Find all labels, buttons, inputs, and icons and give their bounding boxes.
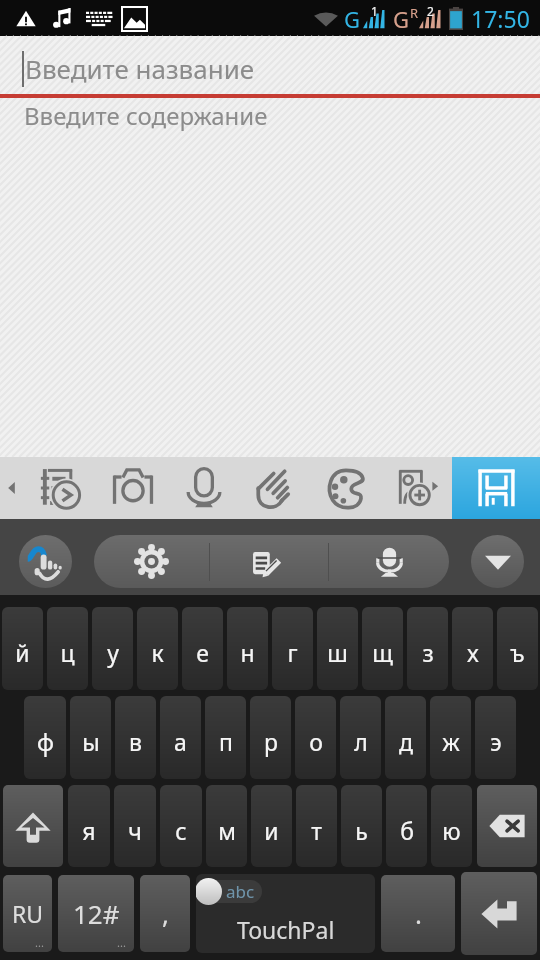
staticText: ш [327, 637, 348, 668]
button[interactable]: ь [341, 785, 382, 867]
button[interactable]: е [182, 607, 223, 690]
staticText: б [400, 815, 414, 846]
staticText: з [422, 637, 434, 668]
button[interactable]: Colour [310, 457, 381, 519]
staticText: о [309, 726, 323, 757]
staticText: ю [442, 815, 461, 846]
staticText: и [264, 815, 279, 846]
staticText: т [311, 815, 322, 846]
staticText: ... [35, 935, 44, 950]
button[interactable]: я [68, 785, 110, 867]
button[interactable]: Settings [94, 535, 209, 588]
button[interactable]: ц [47, 607, 88, 690]
button[interactable]: Enter [461, 872, 537, 955]
staticText: й [15, 637, 30, 668]
staticText: ф [37, 726, 54, 757]
staticText: Введите содержание [24, 99, 268, 132]
staticText: Введите название [25, 51, 255, 86]
staticText: х [467, 637, 479, 668]
button[interactable]: Schedule [26, 457, 97, 519]
button[interactable]: м [206, 785, 247, 867]
button[interactable]: д [385, 696, 426, 779]
button[interactable]: ч [114, 785, 156, 867]
staticText: 17:50 [471, 3, 530, 34]
staticText: я [82, 815, 96, 846]
staticText: 2 [427, 3, 434, 19]
button[interactable]: т [296, 785, 337, 867]
button[interactable]: RU [3, 875, 52, 952]
button[interactable]: More [0, 457, 26, 519]
button[interactable]: ж [430, 696, 471, 779]
staticText: к [151, 637, 164, 668]
button[interactable]: Backspace [477, 785, 537, 867]
button[interactable]: Shift [3, 785, 63, 867]
button[interactable]: з [407, 607, 448, 690]
button[interactable]: TouchPal [19, 535, 72, 588]
button[interactable]: Hide keyboard [471, 535, 524, 588]
button[interactable]: й [2, 607, 43, 690]
staticText: TouchPal [237, 914, 335, 945]
staticText: г [287, 637, 298, 668]
button[interactable]: Voice input [329, 535, 449, 588]
staticText: ъ [510, 637, 525, 668]
button[interactable]: 12# [58, 875, 134, 952]
button[interactable]: ф [24, 696, 66, 779]
button[interactable]: у [92, 607, 133, 690]
button[interactable]: р [250, 696, 291, 779]
button[interactable]: , [140, 875, 190, 952]
button[interactable]: ю [431, 785, 472, 867]
staticText: н [240, 637, 255, 668]
button[interactable]: Edit [210, 535, 328, 588]
staticText: п [219, 726, 233, 757]
button[interactable]: Save [452, 457, 540, 519]
button[interactable]: о [295, 696, 336, 779]
button[interactable]: х [452, 607, 493, 690]
staticText: 12# [73, 896, 120, 931]
staticText: abc [226, 880, 255, 903]
staticText: э [490, 726, 502, 757]
staticText: 1 [371, 3, 378, 19]
button[interactable]: э [475, 696, 516, 779]
button[interactable]: Record audio [168, 457, 239, 519]
button[interactable]: н [227, 607, 268, 690]
staticText: р [264, 726, 278, 757]
staticText: щ [372, 637, 393, 668]
button[interactable]: щ [362, 607, 403, 690]
staticText: G [393, 4, 410, 34]
button[interactable]: а [160, 696, 201, 779]
button[interactable]: л [340, 696, 381, 779]
staticText: R [410, 4, 419, 22]
button[interactable]: Add attachment [381, 457, 452, 519]
button[interactable]: Draw [239, 457, 310, 519]
button[interactable]: к [137, 607, 178, 690]
staticText: ч [128, 815, 142, 846]
button[interactable]: и [251, 785, 292, 867]
button[interactable]: ш [317, 607, 358, 690]
staticText: с [175, 815, 187, 846]
staticText: д [399, 726, 413, 757]
staticText: а [174, 726, 187, 757]
staticText: RU [12, 898, 44, 929]
button[interactable]: . [381, 875, 455, 952]
button[interactable]: ы [70, 696, 111, 779]
staticText: у [107, 637, 119, 668]
button[interactable]: в [115, 696, 156, 779]
button[interactable]: г [272, 607, 313, 690]
staticText: ... [117, 935, 126, 950]
staticText: в [129, 726, 142, 757]
staticText: . [415, 896, 422, 931]
button[interactable]: Space [196, 874, 375, 953]
button[interactable]: п [205, 696, 246, 779]
staticText: м [218, 815, 236, 846]
button[interactable]: с [160, 785, 202, 867]
staticText: л [354, 726, 368, 757]
button[interactable]: ъ [497, 607, 538, 690]
staticText: ц [60, 637, 75, 668]
button[interactable]: б [386, 785, 427, 867]
staticText: ж [442, 726, 460, 757]
button[interactable]: Camera [97, 457, 168, 519]
staticText: ь [355, 815, 368, 846]
staticText: G [344, 4, 361, 34]
staticText: ы [82, 726, 100, 757]
staticText: , [162, 896, 169, 931]
